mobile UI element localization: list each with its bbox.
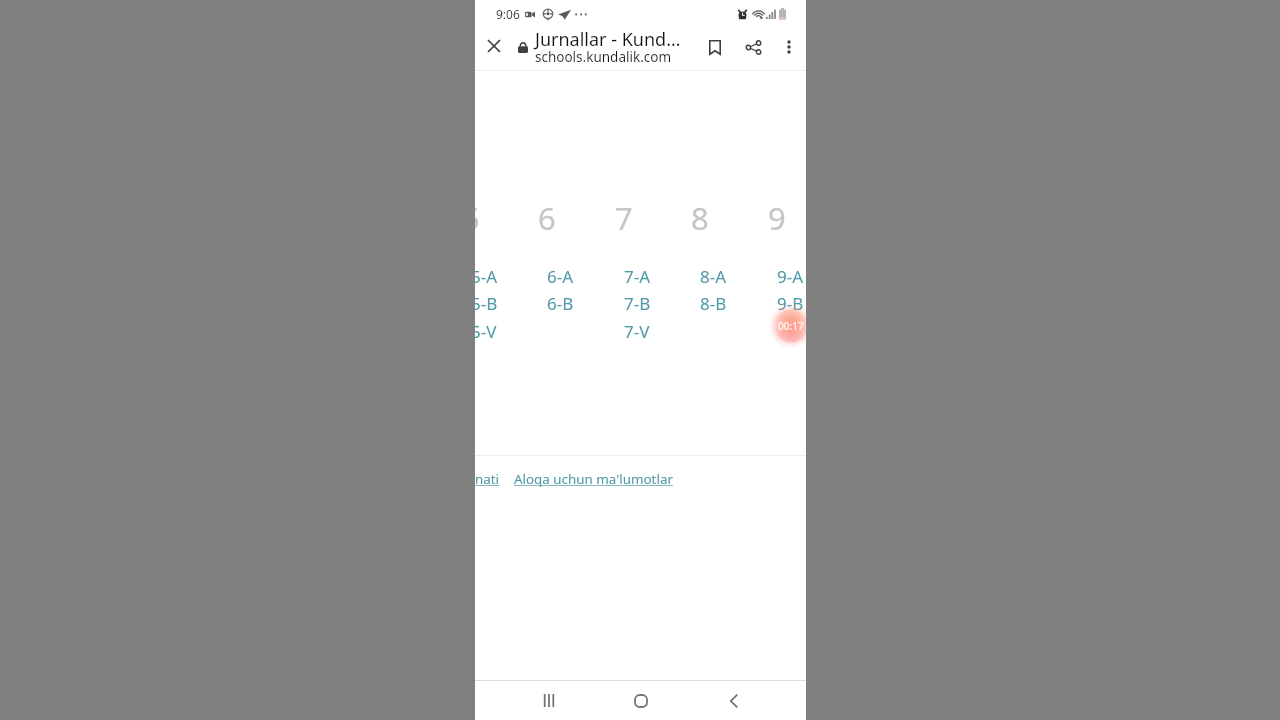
button[interactable]: 5-A bbox=[475, 265, 508, 287]
staticText: schools.kundalik.com bbox=[535, 48, 672, 66]
staticText: 8-B bbox=[700, 292, 727, 314]
staticText: 9-A bbox=[777, 265, 804, 287]
button[interactable]: Bookmark bbox=[696, 30, 734, 68]
button[interactable]: nati bbox=[475, 464, 500, 494]
button[interactable]: Screen recording timer 00:17 bbox=[763, 298, 806, 354]
button[interactable]: 7-A bbox=[613, 265, 661, 287]
button[interactable]: 5-B bbox=[475, 292, 508, 314]
staticText: 5 bbox=[475, 197, 480, 235]
button[interactable]: 8-A bbox=[689, 265, 737, 287]
button[interactable]: Share bbox=[734, 30, 772, 68]
staticText: 00:17 bbox=[778, 319, 804, 333]
button[interactable]: 5-V bbox=[475, 320, 508, 342]
staticText: 9-B bbox=[777, 292, 804, 314]
staticText: 5-A bbox=[475, 265, 498, 287]
button[interactable]: 7-B bbox=[613, 292, 661, 314]
staticText: 7-B bbox=[624, 292, 651, 314]
button[interactable]: Recent apps bbox=[529, 681, 568, 720]
staticText: 9:06 bbox=[496, 6, 520, 22]
staticText: Jurnallar - Kund… bbox=[535, 27, 681, 52]
staticText: 5-V bbox=[475, 320, 497, 342]
button[interactable]: Back bbox=[714, 681, 753, 720]
staticText: 6-B bbox=[547, 292, 574, 314]
button[interactable]: 8-B bbox=[689, 292, 737, 314]
button[interactable]: Aloqa uchun ma'lumotlar bbox=[514, 464, 673, 494]
staticText: 9 bbox=[768, 197, 786, 235]
staticText: 7-V bbox=[624, 320, 650, 342]
staticText: 5-B bbox=[475, 292, 498, 314]
staticText: nati bbox=[475, 470, 500, 488]
button[interactable]: Close bbox=[475, 30, 513, 68]
staticText: 6 bbox=[538, 197, 556, 235]
button[interactable]: 7-V bbox=[613, 320, 661, 342]
staticText: 8 bbox=[691, 197, 709, 235]
button[interactable]: 9-A bbox=[766, 265, 806, 287]
button[interactable]: Home bbox=[621, 681, 660, 720]
staticText: 8-A bbox=[700, 265, 727, 287]
button[interactable]: More options bbox=[772, 32, 806, 66]
button[interactable]: 6-B bbox=[536, 292, 584, 314]
staticText: 7-A bbox=[624, 265, 651, 287]
staticText: 7 bbox=[615, 197, 633, 235]
staticText: 6-A bbox=[547, 265, 574, 287]
button[interactable]: 6-A bbox=[536, 265, 584, 287]
staticText: Aloqa uchun ma'lumotlar bbox=[514, 470, 673, 488]
button[interactable]: 9-B bbox=[766, 292, 806, 314]
